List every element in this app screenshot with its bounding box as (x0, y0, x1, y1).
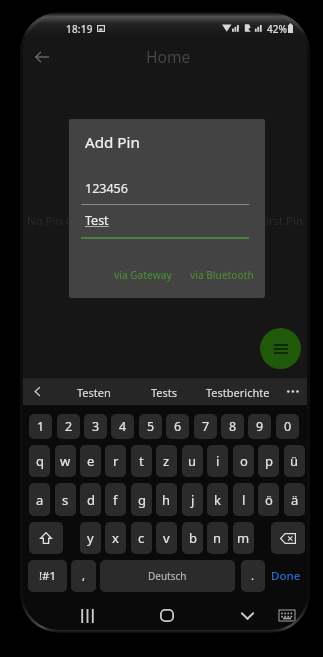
staticText: 4 (119, 418, 127, 435)
button[interactable]: . (241, 560, 265, 592)
button[interactable]: 5 (139, 414, 162, 439)
button[interactable]: c (131, 522, 152, 554)
button[interactable]: 4 (111, 414, 134, 439)
staticText: f (113, 491, 118, 509)
staticText: s (62, 491, 69, 509)
staticText: o (240, 452, 248, 470)
button[interactable]: Shift (29, 522, 63, 554)
staticText: No Pin Created! Tap the button to add yo… (23, 213, 307, 229)
button[interactable]: Home (147, 601, 187, 630)
button[interactable]: h (156, 483, 177, 516)
staticText: e (87, 452, 95, 470)
button[interactable]: w (55, 445, 76, 477)
staticText: Add Pin (85, 132, 140, 153)
staticText: w (60, 452, 71, 470)
button[interactable]: 0 (276, 414, 299, 439)
staticText: 123456 (85, 180, 128, 197)
staticText: x (112, 529, 119, 547)
button[interactable]: 9 (248, 414, 271, 439)
button[interactable]: 6 (166, 414, 189, 439)
button[interactable]: 8 (221, 414, 244, 439)
button[interactable]: via Bluetooth (186, 265, 258, 285)
button[interactable]: t (131, 445, 152, 477)
button[interactable]: ü (284, 445, 305, 477)
staticText: 42% (267, 22, 287, 36)
staticText: ü (290, 452, 299, 470)
button[interactable]: r (105, 445, 126, 477)
staticText: Tests (151, 385, 178, 400)
button[interactable]: 1 (29, 414, 52, 439)
button[interactable]: n (207, 522, 228, 554)
staticText: Testberichte (206, 385, 270, 400)
button[interactable]: q (29, 445, 50, 477)
staticText: 0 (284, 418, 292, 435)
button[interactable]: ö (258, 483, 279, 516)
button[interactable]: Done (267, 560, 304, 592)
button[interactable]: y (80, 522, 101, 554)
button[interactable]: s (55, 483, 76, 516)
button[interactable]: z (156, 445, 177, 477)
staticText: 3 (92, 418, 100, 435)
button[interactable]: p (258, 445, 279, 477)
button[interactable]: via Gateway (110, 265, 176, 285)
button[interactable]: m (233, 522, 254, 554)
button[interactable]: i (207, 445, 228, 477)
button[interactable]: More options (287, 390, 299, 393)
staticText: h (162, 491, 171, 509)
staticText: , (82, 568, 86, 584)
staticText: 7 (202, 418, 210, 435)
button[interactable]: Switch keyboard (273, 601, 301, 630)
staticText: via Gateway (114, 268, 172, 282)
staticText: Test (85, 212, 109, 229)
staticText: v (163, 529, 170, 547)
button[interactable]: k (207, 483, 228, 516)
staticText: ö (265, 491, 273, 509)
staticText: g (138, 491, 146, 509)
staticText: m (237, 529, 250, 547)
staticText: a (36, 491, 44, 509)
button[interactable]: g (131, 483, 152, 516)
button[interactable]: a (29, 483, 50, 516)
staticText: Home (146, 46, 191, 67)
staticText: u (188, 452, 197, 470)
staticText: i (216, 452, 220, 470)
staticText: b (189, 529, 197, 547)
staticText: k (214, 491, 221, 509)
button[interactable]: 7 (194, 414, 217, 439)
staticText: !#1 (39, 568, 57, 584)
button[interactable]: f (105, 483, 126, 516)
button[interactable]: Back (25, 40, 59, 74)
button[interactable]: Backspace (271, 522, 305, 554)
staticText: ä (291, 491, 299, 509)
staticText: n (213, 529, 222, 547)
button[interactable]: ä (284, 483, 305, 516)
button[interactable]: 2 (57, 414, 80, 439)
button[interactable]: j (182, 483, 203, 516)
button[interactable]: d (80, 483, 101, 516)
staticText: . (251, 568, 255, 584)
button[interactable]: !#1 (28, 560, 67, 592)
staticText: y (87, 529, 94, 547)
staticText: Deutsch (148, 569, 187, 583)
button[interactable]: Recents (67, 601, 107, 630)
button[interactable]: Add pin menu (260, 328, 301, 369)
button[interactable]: Deutsch (100, 560, 235, 592)
button[interactable]: u (182, 445, 203, 477)
button[interactable]: , (71, 560, 96, 592)
button[interactable]: 3 (84, 414, 107, 439)
staticText: p (265, 452, 273, 470)
button[interactable]: Hide keyboard (227, 601, 267, 630)
button[interactable]: o (233, 445, 254, 477)
button[interactable]: b (182, 522, 203, 554)
staticText: q (36, 452, 44, 470)
staticText: l (242, 491, 246, 509)
button[interactable]: e (80, 445, 101, 477)
staticText: 5 (147, 418, 155, 435)
staticText: r (113, 452, 119, 470)
button[interactable]: l (233, 483, 254, 516)
staticText: 2 (65, 418, 73, 435)
button[interactable]: x (105, 522, 126, 554)
button[interactable]: v (156, 522, 177, 554)
staticText: 1 (37, 418, 45, 435)
staticText: 8 (229, 418, 237, 435)
